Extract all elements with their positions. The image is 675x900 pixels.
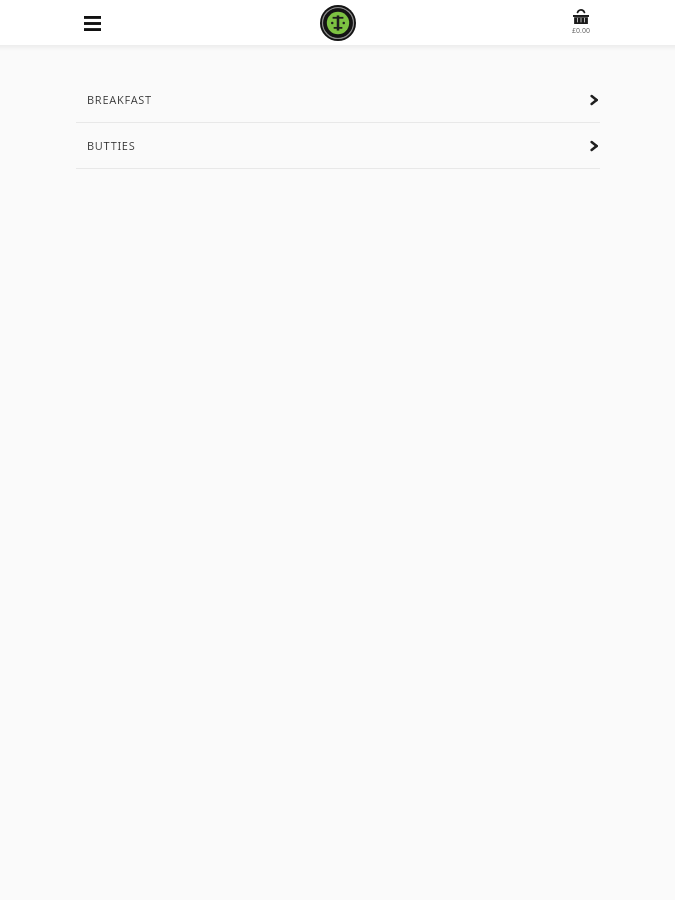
- staticText: BUTTIES: [87, 138, 588, 153]
- staticText: £0.00: [572, 26, 590, 36]
- button[interactable]: Basket, £0.00: [556, 9, 606, 36]
- staticText: BREAKFAST: [87, 92, 588, 107]
- button[interactable]: BUTTIES: [0, 123, 675, 168]
- button[interactable]: Open menu: [74, 5, 110, 41]
- button[interactable]: BREAKFAST: [0, 77, 675, 122]
- button[interactable]: Home: [318, 3, 358, 43]
